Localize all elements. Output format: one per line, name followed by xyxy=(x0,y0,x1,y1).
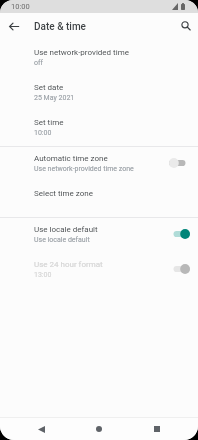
button[interactable]: Automatic time zone xyxy=(0,147,198,182)
staticText: 10:00 xyxy=(11,2,30,11)
button[interactable]: Use 24 hour format xyxy=(0,253,198,288)
staticText: off xyxy=(34,59,43,67)
staticText: Select time zone xyxy=(34,189,93,198)
staticText: 10:00 xyxy=(34,129,52,137)
button[interactable]: Navigate up xyxy=(5,16,24,35)
staticText: Date & time xyxy=(34,21,86,33)
button[interactable]: Use network-provided time xyxy=(0,41,198,76)
staticText: Use network-provided time zone xyxy=(34,165,134,173)
staticText: Use 24 hour format xyxy=(34,260,103,269)
staticText: 13:00 xyxy=(34,271,52,279)
staticText: Set date xyxy=(34,83,64,92)
staticText: Use locale default xyxy=(34,236,90,244)
button[interactable]: Back xyxy=(33,418,49,440)
button[interactable]: Toggle xyxy=(169,227,190,241)
staticText: Use locale default xyxy=(34,225,98,234)
button[interactable]: Use locale default xyxy=(0,218,198,253)
button[interactable]: Search xyxy=(177,17,196,36)
button[interactable]: Set time xyxy=(0,111,198,146)
button[interactable]: Toggle xyxy=(169,156,190,170)
button[interactable]: Select time zone xyxy=(0,182,198,217)
button[interactable]: Home xyxy=(91,418,107,440)
staticText: Set time xyxy=(34,118,64,127)
button[interactable]: Toggle xyxy=(169,262,190,276)
staticText: 25 May 2021 xyxy=(34,94,75,102)
button[interactable]: Set date xyxy=(0,76,198,111)
button[interactable]: Recent apps xyxy=(149,418,165,440)
staticText: Use network-provided time xyxy=(34,48,129,57)
staticText: Automatic time zone xyxy=(34,154,108,163)
